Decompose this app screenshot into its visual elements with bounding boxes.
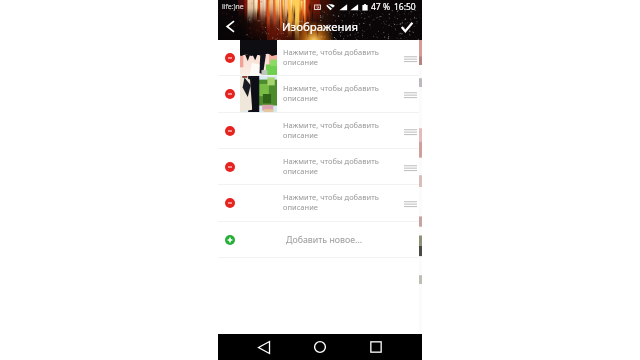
button[interactable]: Reorder (400, 40, 420, 75)
staticText: Добавить новое... (286, 234, 363, 246)
button[interactable]: Reorder (400, 185, 420, 221)
button[interactable]: Remove image (218, 185, 422, 221)
staticText: Нажмите, чтобы добавить описание (283, 156, 400, 176)
staticText: Нажмите, чтобы добавить описание (283, 83, 400, 103)
staticText: Нажмите, чтобы добавить описание (283, 120, 400, 140)
button[interactable]: Добавить новое... (218, 222, 422, 257)
button[interactable]: Reorder (400, 113, 420, 148)
button[interactable]: Remove image (218, 149, 422, 184)
staticText: Нажмите, чтобы добавить описание (283, 47, 400, 67)
staticText: 47 % (371, 1, 390, 13)
button[interactable]: Remove image (225, 53, 235, 63)
button[interactable]: Reorder (400, 149, 420, 184)
staticText: life:)ne (222, 2, 244, 11)
button[interactable]: Remove image (218, 113, 422, 148)
button[interactable]: Remove image (218, 76, 422, 112)
button[interactable]: Reorder (400, 76, 420, 112)
button[interactable]: Recent apps (348, 334, 404, 360)
button[interactable]: Remove image (225, 89, 235, 99)
button[interactable]: Back (236, 334, 292, 360)
staticText: Нажмите, чтобы добавить описание (283, 192, 400, 212)
button[interactable]: Remove image (218, 40, 422, 75)
button[interactable]: Home (292, 334, 348, 360)
button[interactable]: Remove image (225, 162, 235, 172)
button[interactable]: Back (218, 13, 242, 40)
button[interactable]: Remove image (225, 198, 235, 208)
button[interactable]: Done (391, 13, 422, 40)
staticText: Изображения (282, 19, 359, 35)
staticText: 16:50 (394, 1, 416, 13)
button[interactable]: Remove image (225, 126, 235, 136)
